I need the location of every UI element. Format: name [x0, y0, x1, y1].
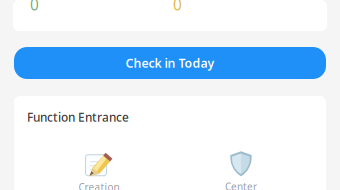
staticText: 0 — [173, 0, 182, 15]
button[interactable]: Center — [170, 149, 312, 190]
staticText: Creation — [78, 180, 119, 190]
staticText: 0 — [30, 0, 39, 15]
staticText: Function Entrance — [27, 109, 129, 125]
button[interactable]: Check in Today — [14, 47, 326, 79]
button[interactable]: Creation — [28, 149, 170, 190]
staticText: Center — [225, 180, 257, 190]
staticText: Check in Today — [125, 55, 214, 71]
